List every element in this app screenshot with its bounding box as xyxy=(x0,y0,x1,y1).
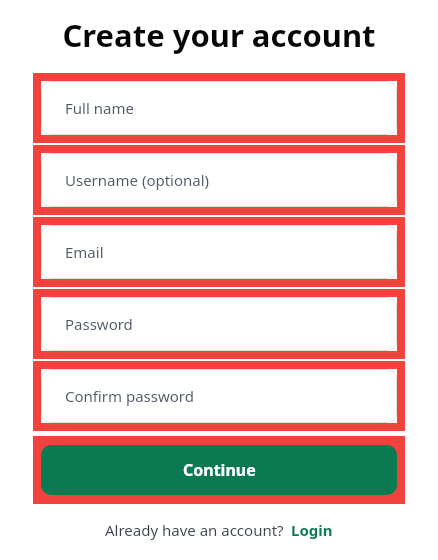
button[interactable]: Confirm password xyxy=(33,361,405,431)
staticText: Full name xyxy=(65,98,134,118)
staticText: Login xyxy=(291,520,333,540)
button[interactable]: Continue xyxy=(33,436,405,504)
staticText: Username (optional) xyxy=(65,170,210,190)
button[interactable]: Password xyxy=(33,289,405,359)
staticText: Continue xyxy=(183,459,256,481)
staticText: Already have an account? xyxy=(105,520,284,540)
staticText: Email xyxy=(65,242,104,262)
button[interactable]: Username (optional) xyxy=(33,145,405,215)
button[interactable]: Email xyxy=(33,217,405,287)
button[interactable]: Full name xyxy=(33,73,405,143)
staticText: Confirm password xyxy=(65,386,194,406)
button[interactable]: Login xyxy=(291,520,333,540)
staticText: Password xyxy=(65,314,133,334)
staticText: Create your account xyxy=(0,14,438,56)
